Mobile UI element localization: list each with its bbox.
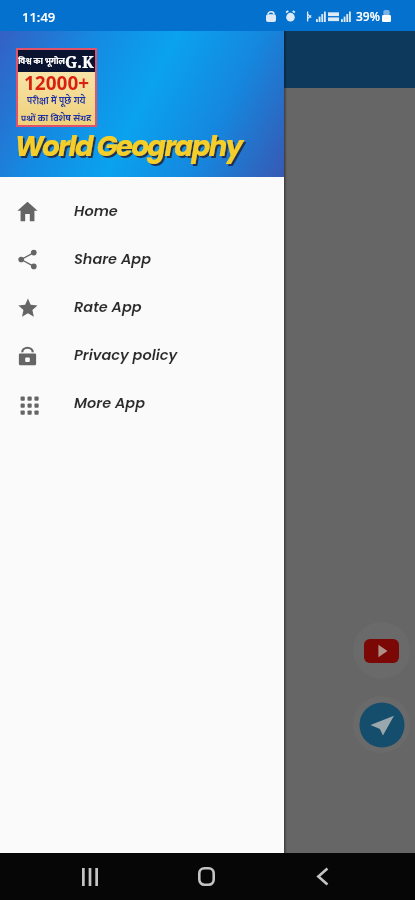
button[interactable]: Recent apps <box>44 853 136 900</box>
staticText: प्रश्नों का विशेष संग्रह <box>21 111 92 121</box>
staticText: More App <box>74 393 146 413</box>
button[interactable]: Back <box>276 853 368 900</box>
button[interactable]: More App <box>0 379 284 427</box>
staticText: 12000+ <box>24 70 90 96</box>
button[interactable]: Share App <box>0 235 284 283</box>
staticText: G.K. <box>65 51 95 73</box>
staticText: Rate App <box>74 297 142 317</box>
button[interactable]: Rate App <box>0 283 284 331</box>
staticText: 11:49 <box>22 8 56 26</box>
button[interactable]: YouTube channel <box>353 622 410 679</box>
staticText: Share App <box>74 249 151 269</box>
staticText: Home <box>74 201 118 221</box>
button[interactable]: Telegram channel <box>353 696 410 753</box>
staticText: World Geography <box>17 129 244 167</box>
staticText: परीक्षा में पूछे गये <box>27 93 86 110</box>
button[interactable]: Home <box>0 187 284 235</box>
staticText: World Geography <box>15 127 242 165</box>
button[interactable]: Home <box>160 853 252 900</box>
staticText: 39% <box>356 8 380 24</box>
button[interactable]: Privacy policy <box>0 331 284 379</box>
staticText: विश्व का भूगोल <box>18 54 65 69</box>
staticText: Privacy policy <box>74 345 178 365</box>
